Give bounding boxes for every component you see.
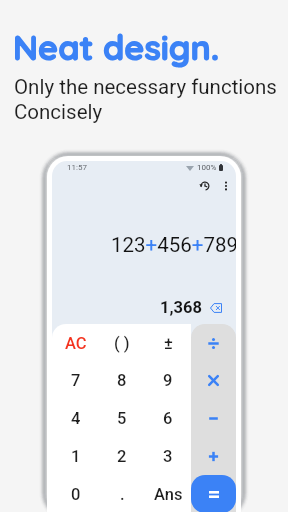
button[interactable]: More options <box>217 177 235 195</box>
button[interactable]: ( ) <box>99 325 145 362</box>
staticText: 2 <box>117 447 127 466</box>
button[interactable]: . <box>99 475 145 512</box>
staticText: 0 <box>71 485 81 504</box>
button[interactable]: 4 <box>52 399 99 437</box>
staticText: Only the necessary functions <box>14 75 277 99</box>
staticText: 5 <box>117 409 127 428</box>
button[interactable]: 8 <box>99 362 145 399</box>
button[interactable]: divide <box>191 325 236 362</box>
button[interactable]: History <box>196 177 214 195</box>
staticText: Concisely <box>14 100 103 124</box>
button[interactable]: plus <box>191 437 236 475</box>
staticText: 100% <box>197 163 217 172</box>
staticText: 4 <box>71 409 81 428</box>
button[interactable]: AC <box>52 325 99 362</box>
staticText: 11:57 <box>67 163 87 172</box>
button[interactable]: Ans <box>145 475 191 512</box>
button[interactable]: Equals <box>191 475 236 512</box>
button[interactable]: 9 <box>145 362 191 399</box>
button[interactable]: minus <box>191 399 236 437</box>
staticText: ± <box>164 334 173 353</box>
button[interactable]: 2 <box>99 437 145 475</box>
staticText: 1 <box>71 447 81 466</box>
staticText: 6 <box>163 409 173 428</box>
staticText: 8 <box>117 371 127 390</box>
staticText: 123+456+789 <box>111 233 236 257</box>
staticText: 7 <box>71 371 81 390</box>
button[interactable]: Backspace <box>210 303 222 313</box>
staticText: ( ) <box>114 334 130 353</box>
button[interactable]: 6 <box>145 399 191 437</box>
staticText: 3 <box>163 447 173 466</box>
button[interactable]: 0 <box>52 475 99 512</box>
button[interactable]: multiply <box>191 362 236 399</box>
staticText: . <box>120 485 125 504</box>
staticText: AC <box>65 334 87 353</box>
staticText: Ans <box>154 485 183 504</box>
button[interactable]: 1 <box>52 437 99 475</box>
staticText: Neat design. <box>13 26 220 69</box>
button[interactable]: 3 <box>145 437 191 475</box>
button[interactable]: 7 <box>52 362 99 399</box>
staticText: 1,368 <box>160 298 202 317</box>
button[interactable]: 5 <box>99 399 145 437</box>
staticText: 9 <box>163 371 173 390</box>
button[interactable]: ± <box>145 325 191 362</box>
